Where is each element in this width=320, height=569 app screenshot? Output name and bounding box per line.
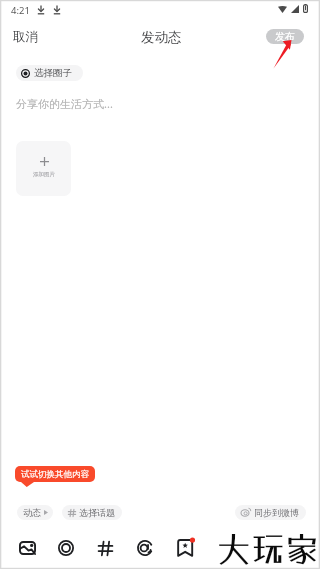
staticText: 同步到微博: [254, 507, 299, 518]
button[interactable]: 提醒: [132, 535, 158, 561]
button[interactable]: 发布: [266, 29, 304, 44]
staticText: 选择话题: [79, 507, 115, 518]
staticText: 大玩家: [217, 529, 320, 569]
staticText: 试试切换其他内容: [21, 469, 89, 480]
button[interactable]: 录制: [53, 535, 79, 561]
button[interactable]: 取消: [6, 24, 45, 50]
button[interactable]: 选择话题: [62, 505, 122, 520]
button[interactable]: 收藏: [172, 535, 198, 561]
staticText: 分享你的生活方式...: [16, 96, 113, 111]
staticText: 动态: [23, 507, 41, 518]
button[interactable]: 添加图片: [16, 141, 71, 196]
button[interactable]: 同步到微博: [235, 505, 306, 520]
staticText: 添加图片: [33, 171, 55, 178]
button[interactable]: 试试切换其他内容: [15, 466, 95, 482]
button[interactable]: 选择圈子: [16, 65, 83, 81]
button[interactable]: 话题: [92, 535, 118, 561]
staticText: 发布: [275, 30, 295, 43]
staticText: 发动态: [141, 29, 182, 46]
staticText: 取消: [13, 29, 38, 45]
staticText: 选择圈子: [34, 67, 72, 79]
staticText: 4:21: [11, 4, 30, 17]
button[interactable]: 动态: [17, 505, 53, 520]
button[interactable]: 图片: [14, 535, 40, 561]
